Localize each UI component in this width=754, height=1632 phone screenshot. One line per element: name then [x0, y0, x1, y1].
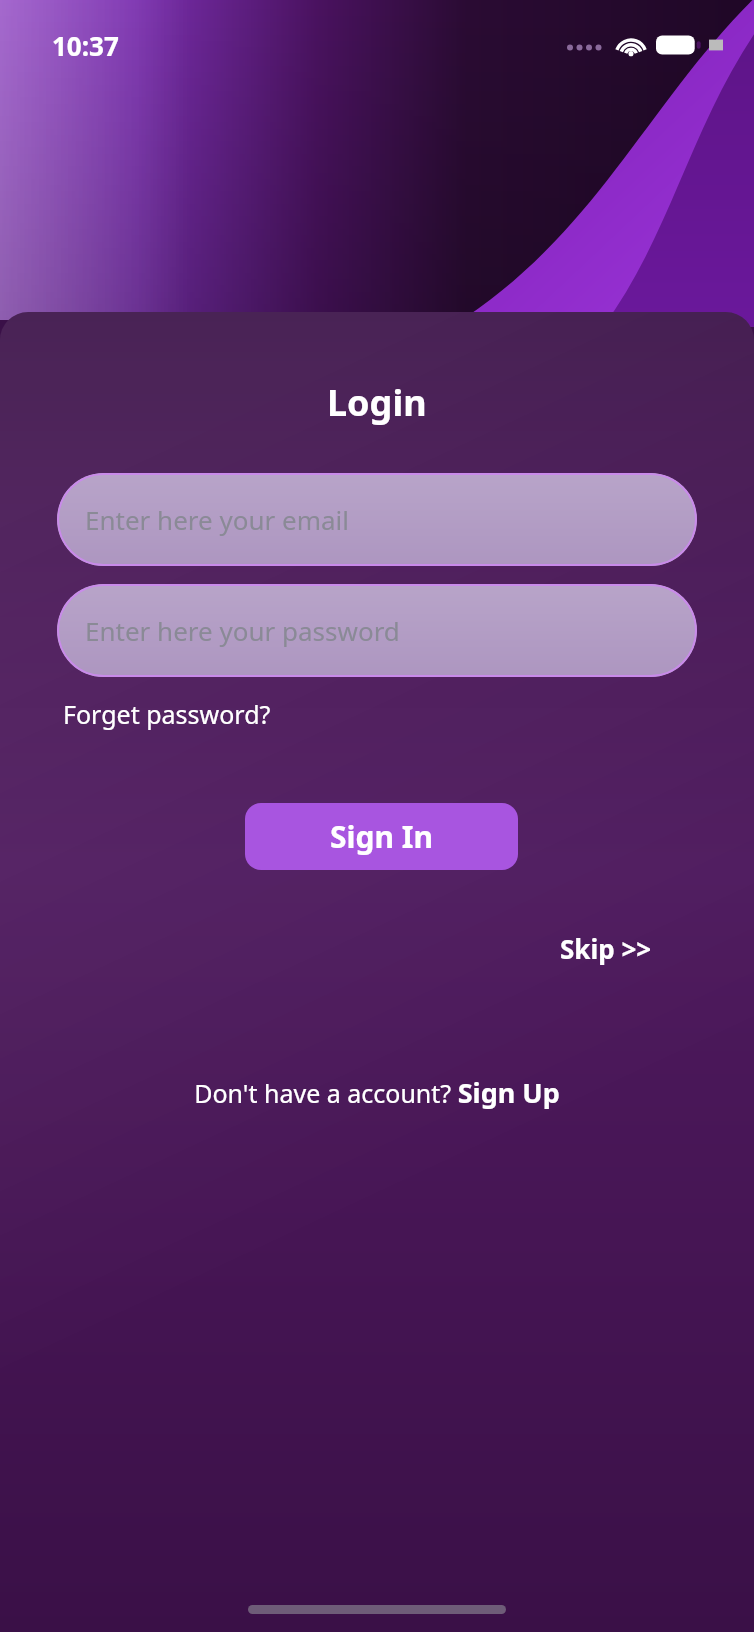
- staticText: Login: [327, 378, 427, 427]
- staticText: Enter here your email: [85, 502, 349, 537]
- button[interactable]: Don't have a account? Sign Up: [186, 1068, 568, 1117]
- staticText: Forget password?: [63, 697, 271, 731]
- button[interactable]: Sign In: [245, 803, 518, 870]
- staticText: Skip >>: [560, 931, 652, 966]
- staticText: Enter here your password: [85, 613, 400, 648]
- staticText: 10:37: [52, 28, 119, 63]
- button[interactable]: Skip >>: [556, 925, 656, 972]
- staticText: Sign In: [330, 816, 433, 857]
- staticText: Don't have a account? Sign Up: [194, 1074, 560, 1111]
- button[interactable]: Forget password?: [63, 693, 271, 735]
- button[interactable]: Enter here your email: [57, 473, 697, 566]
- button[interactable]: Enter here your password: [57, 584, 697, 677]
